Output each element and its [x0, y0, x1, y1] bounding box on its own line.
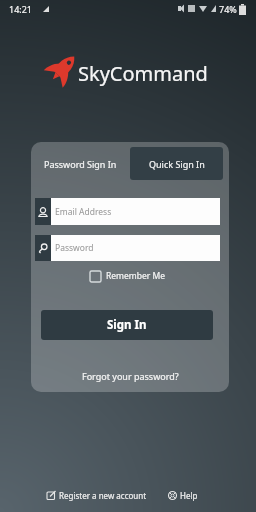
staticText: SkyCommand [78, 60, 208, 87]
staticText: Quick Sign In [149, 158, 205, 170]
staticText: Email Address [55, 206, 112, 218]
staticText: Remember Me [106, 270, 166, 282]
staticText: Password [55, 242, 94, 254]
button[interactable]: Sign In [41, 310, 213, 340]
staticText: Register a new account [59, 490, 147, 501]
button[interactable]: Forgot your password? [31, 368, 229, 384]
staticText: Forgot your password? [82, 370, 179, 382]
button[interactable]: Email Address [51, 198, 220, 225]
staticText: 14:21 [9, 3, 33, 15]
staticText: Sign In [107, 317, 147, 333]
staticText: Help [180, 490, 198, 501]
staticText: Password Sign In [44, 158, 117, 170]
button[interactable]: Password [51, 235, 220, 261]
staticText: 74% [219, 3, 237, 15]
button[interactable]: Help [168, 490, 198, 501]
button[interactable]: Remember Me [90, 270, 166, 282]
button[interactable]: Password Sign In [31, 147, 130, 180]
button[interactable]: Register a new account [47, 490, 147, 501]
button[interactable]: Quick Sign In [130, 147, 223, 180]
